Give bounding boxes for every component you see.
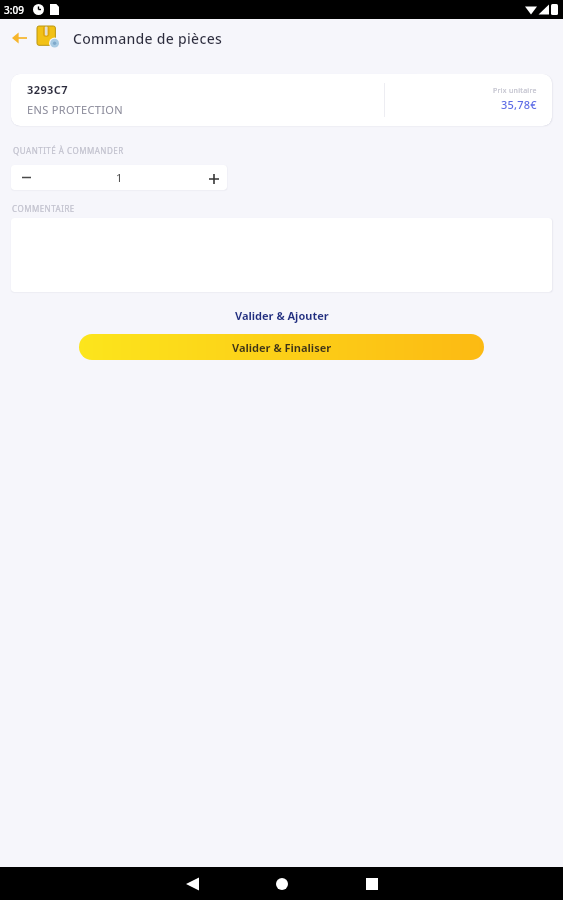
button[interactable]: Decrease quantity xyxy=(11,165,41,190)
staticText: Valider & Ajouter xyxy=(235,308,329,323)
staticText: ENS PROTECTION xyxy=(27,102,124,117)
button[interactable]: Recent apps xyxy=(327,867,417,900)
button[interactable]: Home xyxy=(237,867,327,900)
staticText: 3293C7 xyxy=(27,82,68,97)
button[interactable]: 3293C7 xyxy=(11,74,552,126)
staticText: 1 xyxy=(116,170,123,185)
staticText: 35,78€ xyxy=(501,97,537,112)
button[interactable]: Increase quantity xyxy=(197,165,227,190)
staticText: QUANTITÉ À COMMANDER xyxy=(13,145,124,156)
button[interactable]: Valider & Ajouter xyxy=(221,305,343,326)
staticText: Commande de pièces xyxy=(73,29,223,48)
button[interactable]: Valider & Finaliser xyxy=(79,334,484,360)
button[interactable]: Back xyxy=(147,867,237,900)
staticText: Prix unitaire xyxy=(493,86,537,96)
staticText: 3:09 xyxy=(4,3,24,17)
button[interactable]: Back xyxy=(7,25,31,51)
staticText: COMMENTAIRE xyxy=(12,203,75,214)
staticText: Valider & Finaliser xyxy=(232,340,332,355)
